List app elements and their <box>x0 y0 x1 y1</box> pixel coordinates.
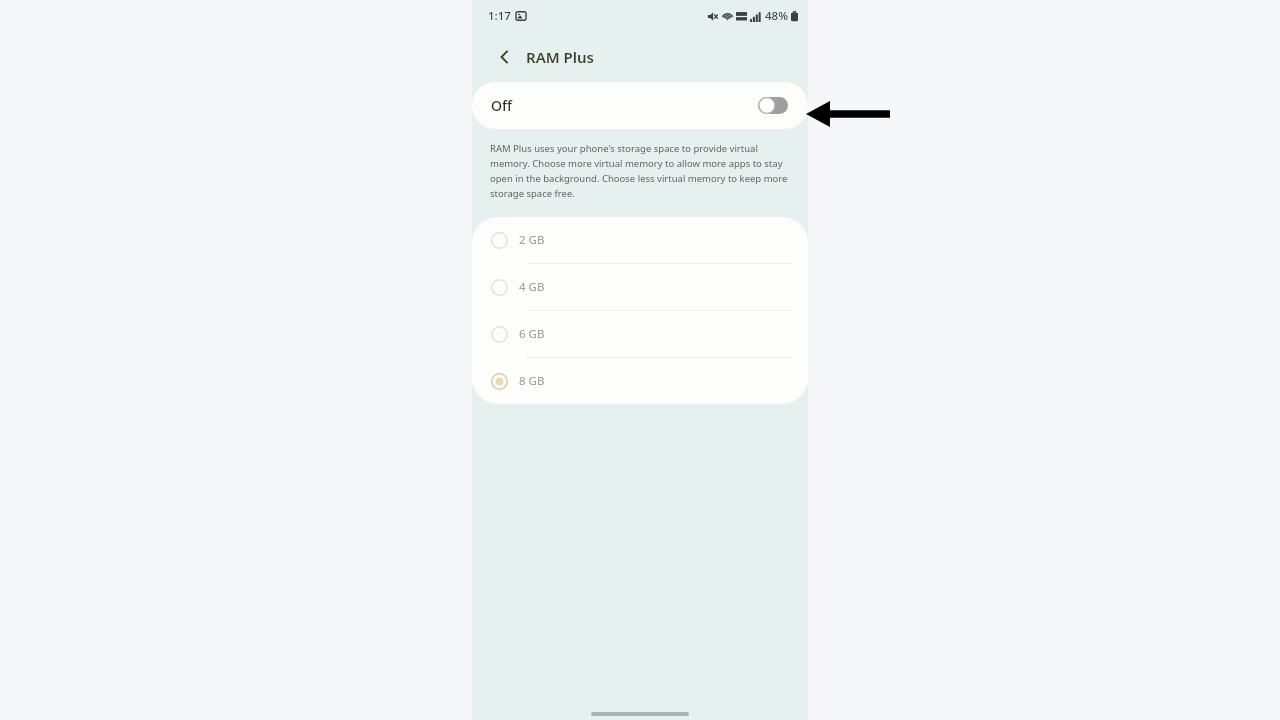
staticText: 1:17 <box>488 8 511 24</box>
button[interactable]: 2 GB <box>472 217 808 264</box>
button[interactable]: 6 GB <box>472 311 808 358</box>
staticText: 2 GB <box>519 232 545 248</box>
staticText: RAM Plus <box>526 47 594 67</box>
staticText: Off <box>491 96 512 115</box>
button[interactable]: Back <box>490 42 520 72</box>
button[interactable]: 8 GB <box>472 358 808 404</box>
staticText: RAM Plus uses your phone's storage space… <box>490 142 792 200</box>
staticText: 4 GB <box>519 279 545 295</box>
other: RAM Plus toggle, Off <box>758 97 788 114</box>
staticText: 8 GB <box>519 373 545 389</box>
button[interactable]: 4 GB <box>472 264 808 311</box>
button[interactable]: Off <box>472 82 808 129</box>
staticText: 48% <box>765 8 788 24</box>
staticText: 6 GB <box>519 326 545 342</box>
